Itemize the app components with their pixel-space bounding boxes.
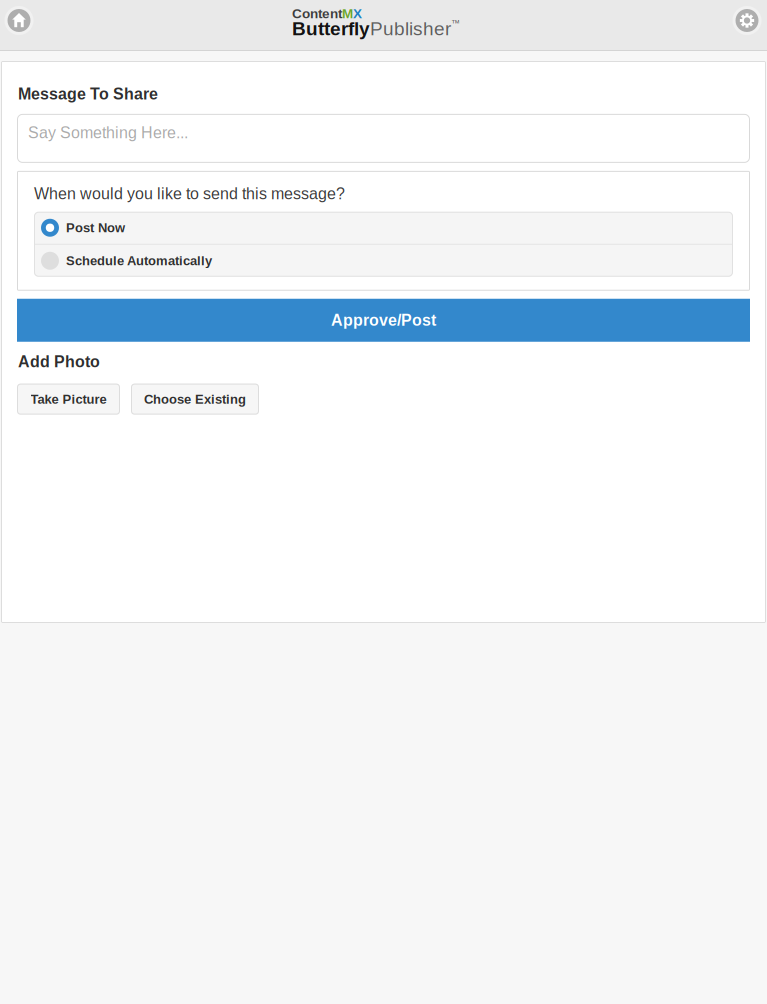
button[interactable]: Say Something Here... [17,114,750,163]
staticText: Take Picture [30,392,106,406]
staticText: ™ [451,18,460,28]
staticText: Content [292,6,342,21]
staticText: When would you like to send this message… [34,185,345,203]
staticText: Choose Existing [144,392,246,406]
staticText: Butterfly [292,18,370,39]
button[interactable]: Settings [731,4,763,36]
staticText: X [353,6,362,21]
staticText: M [342,6,353,21]
button[interactable]: Choose Existing [131,384,259,415]
staticText: Message To Share [18,85,158,103]
staticText: Say Something Here... [28,124,188,142]
staticText: Schedule Automatically [66,253,212,268]
button[interactable]: Home [3,4,35,36]
button[interactable]: Take Picture [17,384,120,415]
staticText: Add Photo [18,353,100,371]
button[interactable]: Schedule Automatically [34,245,733,277]
button[interactable]: Post Now [34,212,733,244]
button[interactable]: Approve/Post [17,299,750,342]
staticText: Post Now [66,220,125,235]
staticText: Approve/Post [331,311,436,329]
staticText: Publisher [370,18,451,39]
